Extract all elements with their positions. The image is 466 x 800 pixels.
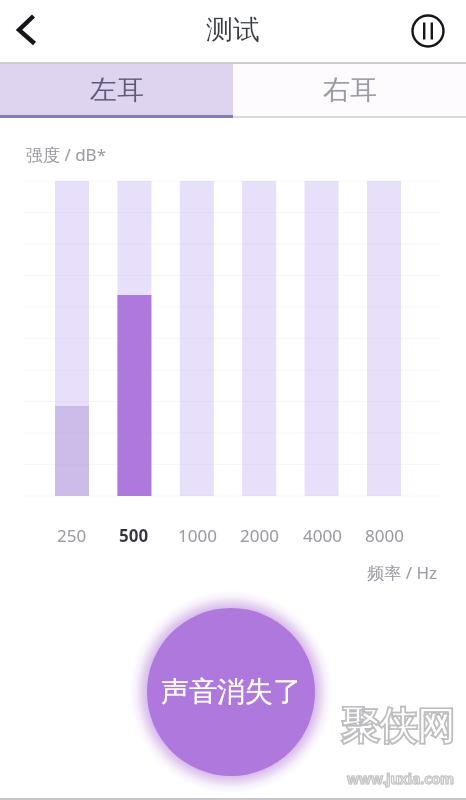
staticText: 左耳 xyxy=(90,73,144,107)
staticText: 8000 xyxy=(365,524,404,547)
staticText: 1000 xyxy=(178,524,217,547)
button[interactable]: Back xyxy=(5,9,47,51)
button[interactable]: 右耳 xyxy=(233,64,466,118)
staticText: 测试 xyxy=(206,13,260,47)
button[interactable]: Pause xyxy=(408,11,448,51)
button[interactable]: 声音消失了 xyxy=(129,590,333,794)
staticText: 2000 xyxy=(240,524,279,547)
staticText: 右耳 xyxy=(323,73,377,107)
staticText: 250 xyxy=(57,524,87,547)
staticText: 强度 / dB* xyxy=(26,143,107,166)
staticText: 4000 xyxy=(303,524,342,547)
staticText: 500 xyxy=(119,524,149,547)
staticText: 聚侠网 xyxy=(341,702,455,750)
button[interactable]: 左耳 xyxy=(0,64,233,118)
staticText: 频率 / Hz xyxy=(0,561,437,584)
staticText: www.juxia.com xyxy=(347,769,454,788)
staticText: 声音消失了 xyxy=(161,674,301,709)
